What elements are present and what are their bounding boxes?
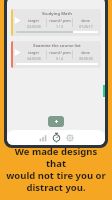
staticText: 1 / 3 <box>56 24 63 29</box>
button[interactable]: Settings <box>64 132 75 143</box>
staticText: 04:00:00 <box>27 56 41 61</box>
staticText: Examine the course list <box>13 43 101 49</box>
staticText: target <box>28 50 39 55</box>
staticText: done <box>81 18 90 23</box>
staticText: 01:26:17 <box>79 24 93 29</box>
button[interactable]: Statistics <box>37 132 48 143</box>
staticText: 02:00:00 <box>27 24 41 29</box>
staticText: round / pom <box>49 18 71 23</box>
staticText: round / pom <box>49 50 71 55</box>
button[interactable]: Examine the course list <box>11 41 101 68</box>
staticText: 0 / 4 <box>56 56 63 61</box>
staticText: Studying Math <box>13 11 101 17</box>
button[interactable]: Studying Math <box>11 9 101 36</box>
staticText: target <box>28 18 39 23</box>
staticText: 00:00:00 <box>79 56 93 61</box>
staticText: We made designs that would not tire you … <box>4 145 108 194</box>
button[interactable]: Timer <box>51 132 62 143</box>
staticText: done <box>81 50 90 55</box>
button[interactable]: Add task <box>48 116 64 127</box>
